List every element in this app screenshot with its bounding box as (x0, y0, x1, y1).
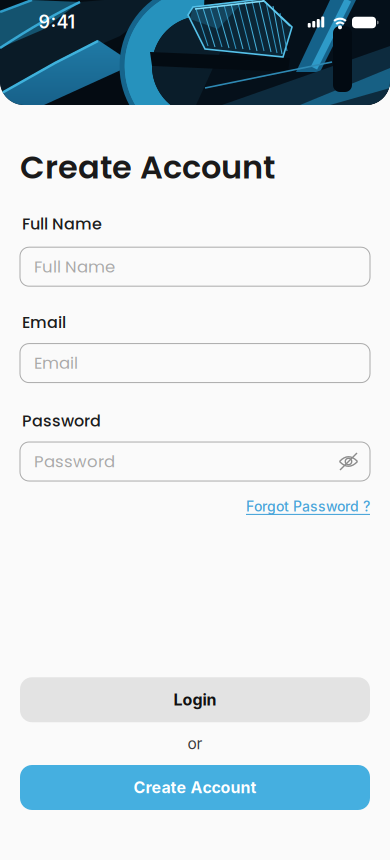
button[interactable]: Login (20, 677, 370, 722)
staticText: Create Account (20, 145, 275, 190)
staticText: Password (22, 410, 101, 432)
button[interactable]: Create Account (20, 765, 370, 810)
staticText: Create Account (133, 778, 256, 797)
button[interactable]: Forgot Password ? (246, 498, 370, 515)
staticText: or (187, 734, 202, 753)
staticText: Forgot Password ? (246, 498, 370, 515)
staticText: Login (173, 690, 216, 709)
staticText: Email (34, 351, 78, 375)
staticText: Email (22, 311, 66, 334)
button[interactable]: Show password (337, 452, 370, 470)
staticText: Password (34, 450, 115, 473)
staticText: Full Name (34, 255, 115, 278)
staticText: 9:41 (38, 11, 75, 33)
staticText: Full Name (22, 213, 102, 235)
